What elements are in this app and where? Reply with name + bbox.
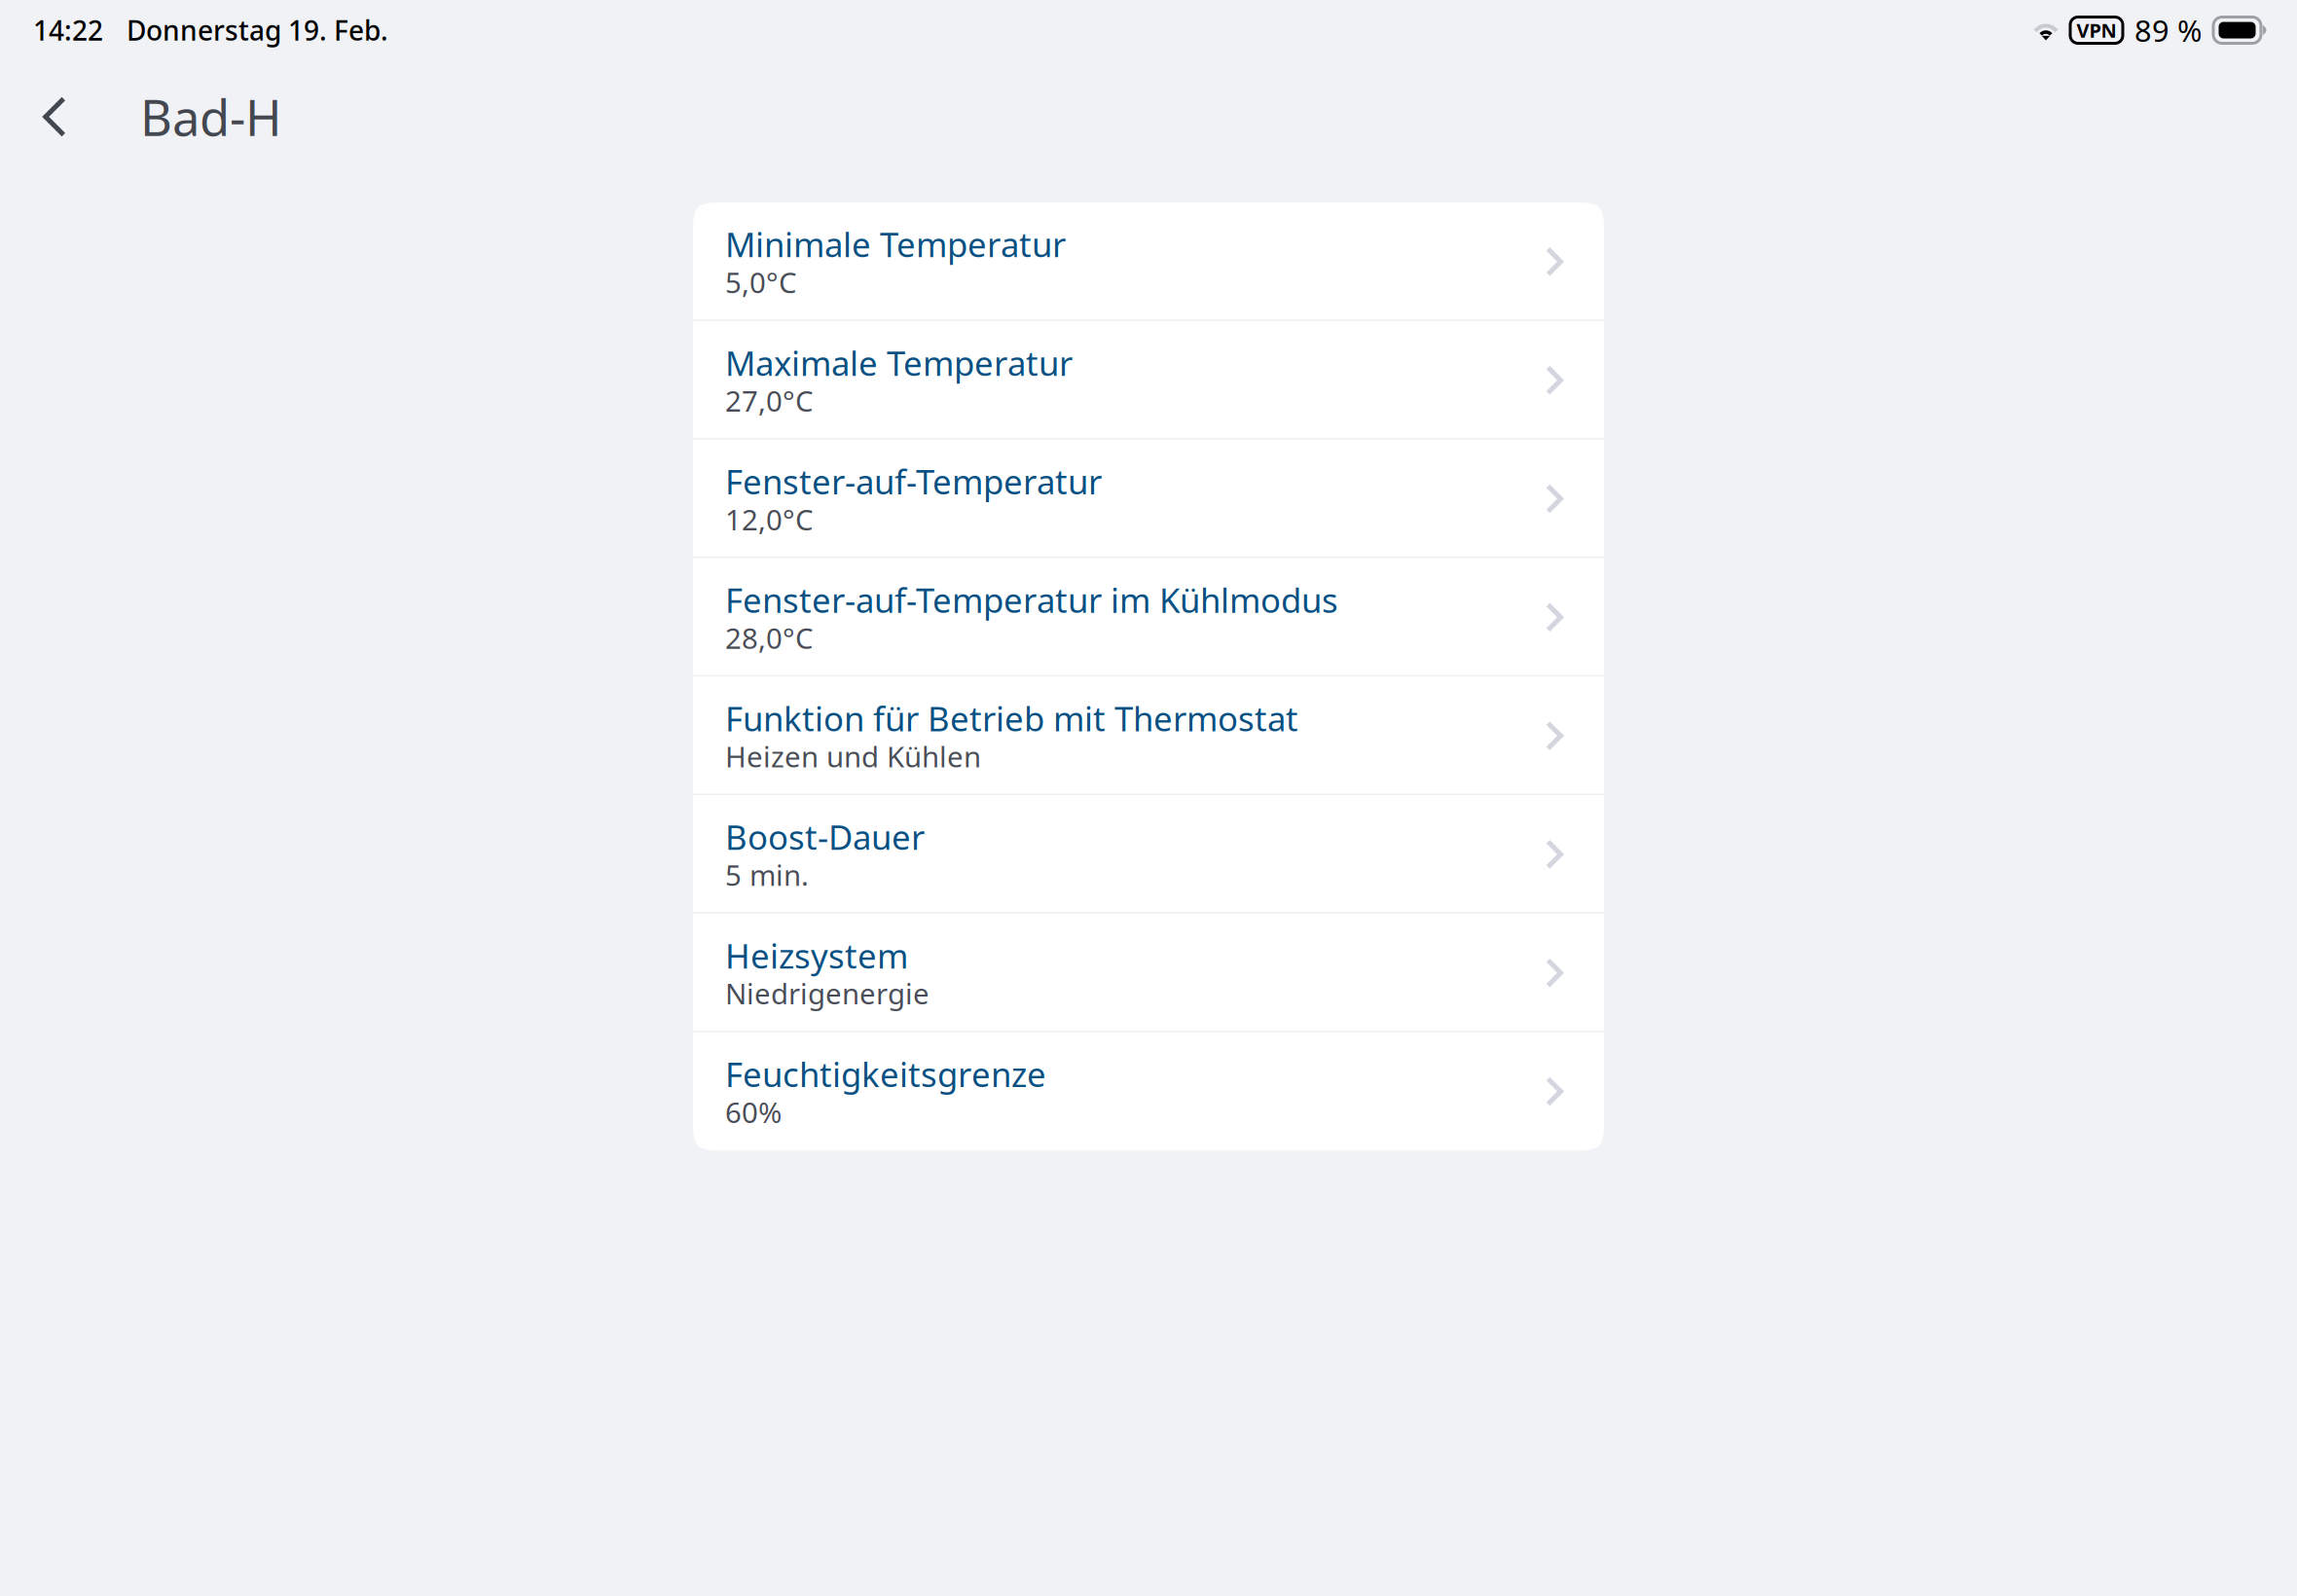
staticText: Maximale Temperatur (725, 340, 1073, 385)
staticText: VPN (2077, 17, 2116, 43)
staticText: 27,0°C (725, 382, 814, 420)
staticText: Bad-H (140, 84, 282, 150)
button[interactable]: Back (22, 71, 87, 155)
staticText: Boost-Dauer (725, 814, 925, 859)
staticText: Minimale Temperatur (725, 222, 1066, 267)
staticText: 12,0°C (725, 500, 814, 538)
staticText: Heizsystem (725, 933, 908, 978)
button[interactable]: Heizsystem (693, 914, 1604, 1032)
button[interactable]: Minimale Temperatur (693, 202, 1604, 321)
button[interactable]: Feuchtigkeitsgrenze (693, 1032, 1604, 1151)
button[interactable]: Fenster-auf-Temperatur im Kühlmodus (693, 558, 1604, 677)
staticText: 89 % (2134, 10, 2202, 50)
staticText: Fenster-auf-Temperatur (725, 459, 1102, 504)
staticText: 5,0°C (725, 263, 797, 301)
staticText: 60% (725, 1093, 782, 1131)
staticText: 14:22 (33, 12, 103, 48)
staticText: Niedrigenergie (725, 974, 930, 1012)
button[interactable]: Boost-Dauer (693, 795, 1604, 914)
button[interactable]: Fenster-auf-Temperatur (693, 439, 1604, 558)
staticText: 5 min. (725, 856, 809, 894)
staticText: Donnerstag 19. Feb. (127, 12, 388, 48)
staticText: Fenster-auf-Temperatur im Kühlmodus (725, 577, 1338, 622)
staticText: Heizen und Kühlen (725, 737, 981, 775)
staticText: 28,0°C (725, 619, 814, 657)
staticText: Funktion für Betrieb mit Thermostat (725, 696, 1298, 741)
staticText: Feuchtigkeitsgrenze (725, 1052, 1046, 1096)
button[interactable]: Funktion für Betrieb mit Thermostat (693, 677, 1604, 795)
button[interactable]: Maximale Temperatur (693, 321, 1604, 439)
